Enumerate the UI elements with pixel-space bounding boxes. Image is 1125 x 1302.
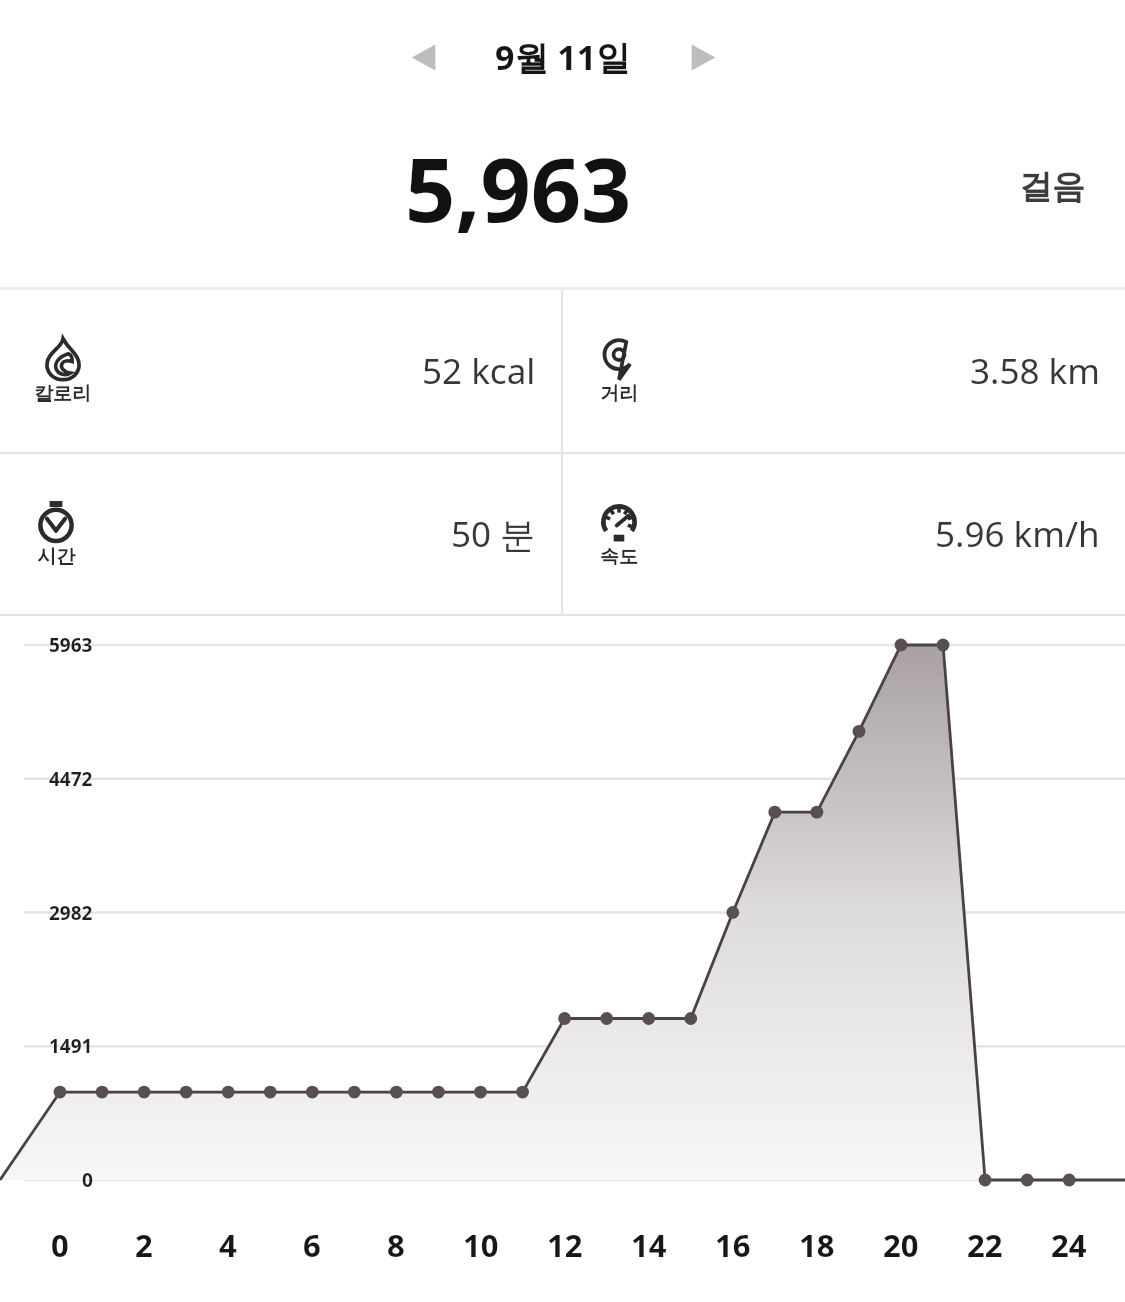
staticText: 5,963 bbox=[405, 128, 632, 248]
staticText: 16 bbox=[715, 1224, 751, 1266]
button[interactable]: 시간 bbox=[0, 454, 561, 614]
staticText: 50 분 bbox=[451, 510, 536, 558]
staticText: 20 bbox=[883, 1224, 919, 1266]
staticText: 18 bbox=[799, 1224, 835, 1266]
staticText: 52 kcal bbox=[422, 347, 536, 395]
staticText: 6 bbox=[303, 1224, 321, 1266]
button[interactable]: 5963 bbox=[0, 616, 1125, 1210]
button[interactable]: 이전 날짜 bbox=[399, 33, 447, 81]
staticText: 8 bbox=[387, 1224, 405, 1266]
staticText: 22 bbox=[967, 1224, 1003, 1266]
staticText: 14 bbox=[631, 1224, 667, 1266]
staticText: 24 bbox=[1051, 1224, 1087, 1266]
staticText: 2982 bbox=[49, 900, 93, 926]
staticText: 12 bbox=[547, 1224, 583, 1266]
staticText: 0 bbox=[51, 1224, 69, 1266]
staticText: 1491 bbox=[49, 1033, 93, 1059]
staticText: 5.96 km/h bbox=[935, 510, 1100, 558]
staticText: 10 bbox=[463, 1224, 499, 1266]
staticText: 4 bbox=[219, 1224, 237, 1266]
staticText: 5963 bbox=[49, 632, 93, 658]
button[interactable]: 5,963 bbox=[0, 118, 1125, 287]
button[interactable]: 다음 날짜 bbox=[679, 33, 727, 81]
button[interactable]: 속도 bbox=[563, 454, 1125, 614]
staticText: 걸음 bbox=[1019, 166, 1085, 208]
staticText: 3.58 km bbox=[970, 347, 1100, 395]
staticText: 4472 bbox=[49, 766, 93, 792]
staticText: 거리 bbox=[600, 382, 638, 406]
staticText: 9월 11일 bbox=[495, 34, 631, 80]
button[interactable]: 거리 bbox=[563, 290, 1125, 452]
button[interactable]: 칼로리 bbox=[0, 290, 561, 452]
staticText: 0 bbox=[82, 1167, 93, 1193]
staticText: 시간 bbox=[37, 545, 75, 569]
staticText: 칼로리 bbox=[34, 382, 91, 406]
staticText: 속도 bbox=[600, 545, 638, 569]
staticText: 2 bbox=[135, 1224, 153, 1266]
